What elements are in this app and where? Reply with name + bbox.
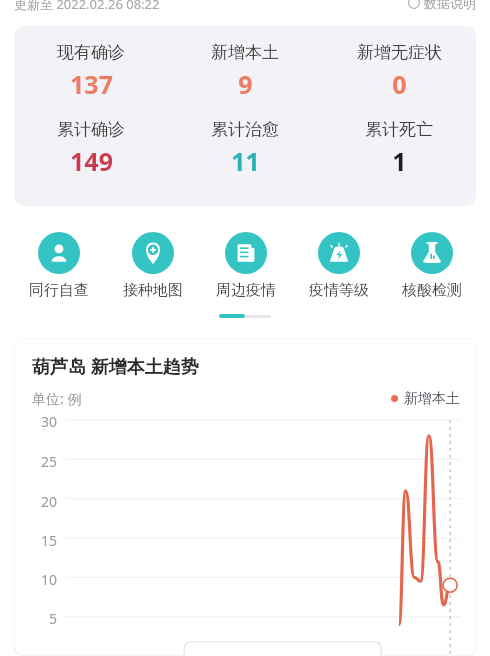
- staticText: 数据说明: [424, 0, 476, 11]
- staticText: 新增本土: [404, 390, 460, 408]
- button[interactable]: 新增无症状: [322, 42, 476, 101]
- staticText: 11: [231, 144, 260, 178]
- button[interactable]: 累计确诊: [14, 119, 168, 178]
- button[interactable]: 疫情等级: [292, 232, 385, 300]
- staticText: 疫情等级: [309, 281, 369, 300]
- staticText: 5: [49, 609, 58, 628]
- staticText: 25: [41, 452, 58, 471]
- staticText: 0: [392, 67, 407, 101]
- button[interactable]: 葫芦岛 新增本土趋势: [14, 338, 476, 656]
- staticText: 新增本土: [211, 42, 279, 63]
- button[interactable]: 累计死亡: [322, 119, 476, 178]
- button[interactable]: 累计治愈: [168, 119, 322, 178]
- staticText: 30: [41, 412, 58, 431]
- button[interactable]: 同行自查: [12, 232, 106, 300]
- staticText: 新增无症状: [357, 42, 442, 63]
- staticText: 接种地图: [123, 281, 183, 300]
- staticText: 同行自查: [29, 281, 89, 300]
- button[interactable]: 新增本土: [168, 42, 322, 101]
- button[interactable]: 周边疫情: [199, 232, 292, 300]
- staticText: 10: [41, 570, 58, 589]
- button[interactable]: Page 1: [219, 314, 245, 318]
- staticText: 单位: 例: [32, 389, 82, 408]
- staticText: 核酸检测: [402, 281, 462, 300]
- button[interactable]: 现有确诊: [14, 42, 168, 101]
- button[interactable]: 接种地图: [106, 232, 199, 300]
- staticText: 现有确诊: [57, 42, 125, 63]
- staticText: 周边疫情: [216, 281, 276, 300]
- staticText: 9: [238, 67, 253, 101]
- staticText: 137: [70, 67, 113, 101]
- staticText: 累计治愈: [211, 119, 279, 140]
- staticText: 1: [392, 144, 407, 178]
- staticText: 149: [70, 144, 113, 178]
- button[interactable]: 核酸检测: [385, 232, 478, 300]
- staticText: 葫芦岛 新增本土趋势: [32, 354, 199, 379]
- staticText: 20: [41, 492, 58, 511]
- button[interactable]: 数据说明: [408, 0, 476, 11]
- staticText: 累计确诊: [57, 119, 125, 140]
- staticText: 15: [41, 531, 58, 550]
- staticText: 更新至 2022.02.26 08:22: [14, 0, 160, 13]
- staticText: 累计死亡: [365, 119, 433, 140]
